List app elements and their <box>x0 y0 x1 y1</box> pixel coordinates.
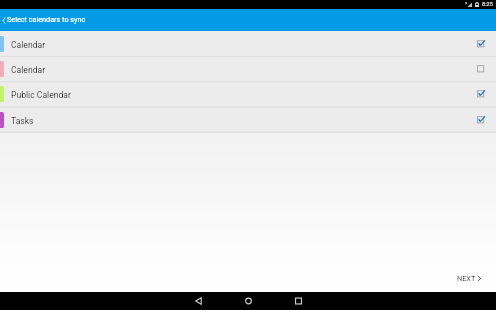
staticText: Calendar <box>11 65 46 75</box>
button[interactable]: NEXT <box>454 271 484 286</box>
staticText: Public Calendar <box>11 90 71 100</box>
button[interactable]: Public Calendar <box>0 81 496 106</box>
button[interactable]: Select calendars to sync <box>0 9 496 31</box>
staticText: Calendar <box>11 40 46 50</box>
button[interactable]: Home <box>234 292 262 310</box>
button[interactable]: Recent apps <box>284 292 312 310</box>
button[interactable]: Calendar <box>0 31 496 56</box>
staticText: 8:25 <box>482 1 493 8</box>
staticText: NEXT <box>457 274 476 283</box>
staticText: Select calendars to sync <box>7 15 86 23</box>
button[interactable]: Calendar <box>0 56 496 81</box>
button[interactable]: Back <box>184 292 212 310</box>
staticText: Tasks <box>11 116 34 126</box>
button[interactable]: Tasks <box>0 107 496 132</box>
